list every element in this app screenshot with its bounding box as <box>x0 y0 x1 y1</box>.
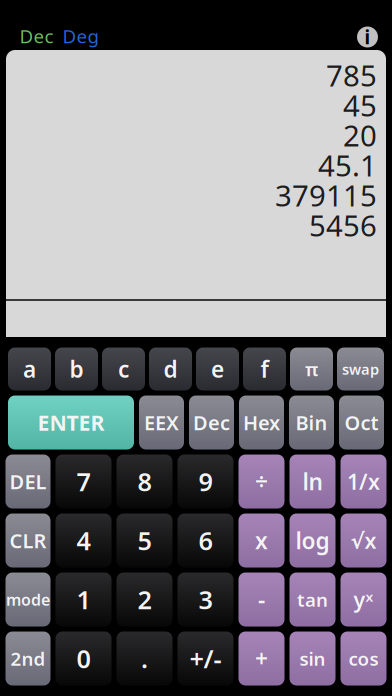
staticText: 2 <box>137 583 151 616</box>
staticText: EEX <box>144 409 179 436</box>
staticText: 9 <box>198 465 212 498</box>
staticText: 45.1 <box>318 145 377 184</box>
staticText: 8 <box>137 465 151 498</box>
button[interactable]: Hex <box>239 395 284 449</box>
button[interactable]: 2 <box>116 572 172 626</box>
staticText: mode <box>6 589 50 610</box>
button[interactable]: swap <box>337 347 384 390</box>
button[interactable]: Bin <box>289 395 334 449</box>
button[interactable]: EEX <box>139 395 184 449</box>
staticText: 5456 <box>309 205 377 244</box>
button[interactable]: 1 <box>55 572 111 626</box>
button[interactable]: . <box>116 631 172 685</box>
button[interactable]: e <box>196 347 239 390</box>
staticText: Hex <box>243 409 280 436</box>
staticText: ÷ <box>255 466 268 496</box>
staticText: e <box>211 354 224 384</box>
staticText: Oct <box>344 409 378 436</box>
button[interactable]: Dec <box>22 23 51 49</box>
button[interactable]: 3 <box>177 572 233 626</box>
button[interactable]: x <box>238 513 284 567</box>
button[interactable]: 4 <box>55 513 111 567</box>
button[interactable]: Oct <box>339 395 384 449</box>
button[interactable]: Deg <box>66 23 95 49</box>
staticText: 379115 <box>275 175 377 214</box>
staticText: ln <box>302 466 322 496</box>
staticText: i <box>364 25 370 49</box>
button[interactable]: sin <box>289 631 335 685</box>
button[interactable]: f <box>243 347 286 390</box>
staticText: log <box>295 525 329 555</box>
button[interactable]: 7 <box>55 454 111 508</box>
button[interactable]: ENTER <box>8 395 134 449</box>
staticText: π <box>305 357 318 381</box>
button[interactable]: a <box>8 347 51 390</box>
button[interactable]: ÷ <box>238 454 284 508</box>
button[interactable]: d <box>149 347 192 390</box>
staticText: 1 <box>76 583 90 616</box>
staticText: 7 <box>76 465 90 498</box>
button[interactable]: π <box>290 347 333 390</box>
staticText: a <box>23 354 36 384</box>
staticText: ENTER <box>37 408 104 437</box>
button[interactable]: yˣ <box>340 572 386 626</box>
staticText: DEL <box>9 468 46 495</box>
button[interactable]: 1/x <box>340 454 386 508</box>
button[interactable]: - <box>238 572 284 626</box>
button[interactable]: tan <box>289 572 335 626</box>
button[interactable]: +/- <box>177 631 233 685</box>
staticText: 6 <box>198 524 212 557</box>
staticText: x <box>255 525 268 555</box>
staticText: 4 <box>76 524 90 557</box>
staticText: +/- <box>189 642 221 675</box>
button[interactable]: mode <box>5 572 50 626</box>
staticText: f <box>260 354 268 384</box>
staticText: c <box>118 354 129 384</box>
button[interactable]: c <box>102 347 145 390</box>
button[interactable]: cos <box>340 631 386 685</box>
staticText: 2nd <box>10 646 45 671</box>
button[interactable]: Dec <box>189 395 234 449</box>
staticText: 5 <box>137 524 151 557</box>
button[interactable]: 5 <box>116 513 172 567</box>
staticText: 0 <box>76 642 90 675</box>
staticText: yˣ <box>353 585 373 614</box>
button[interactable]: b <box>55 347 98 390</box>
button[interactable]: CLR <box>5 513 50 567</box>
staticText: Bin <box>295 409 327 436</box>
staticText: Deg <box>62 24 98 48</box>
staticText: 20 <box>343 115 377 154</box>
staticText: 45 <box>343 85 377 124</box>
button[interactable]: 9 <box>177 454 233 508</box>
staticText: Dec <box>193 409 230 436</box>
staticText: b <box>69 354 83 384</box>
staticText: tan <box>297 587 328 612</box>
staticText: + <box>255 643 268 673</box>
button[interactable]: √x <box>340 513 386 567</box>
staticText: cos <box>348 646 378 671</box>
button[interactable]: 8 <box>116 454 172 508</box>
staticText: - <box>258 584 265 614</box>
button[interactable]: log <box>289 513 335 567</box>
button[interactable]: + <box>238 631 284 685</box>
staticText: Dec <box>19 24 53 48</box>
button[interactable]: 2nd <box>5 631 50 685</box>
staticText: 1/x <box>347 467 380 496</box>
staticText: CLR <box>9 527 46 554</box>
staticText: . <box>141 642 148 675</box>
button[interactable]: 6 <box>177 513 233 567</box>
staticText: 785 <box>326 55 377 94</box>
staticText: sin <box>299 646 325 671</box>
staticText: swap <box>342 359 379 379</box>
button[interactable]: Info <box>357 24 378 47</box>
staticText: 3 <box>198 583 212 616</box>
button[interactable]: DEL <box>5 454 50 508</box>
staticText: d <box>163 354 177 384</box>
button[interactable]: ln <box>289 454 335 508</box>
button[interactable]: 0 <box>55 631 111 685</box>
staticText: √x <box>350 526 376 555</box>
